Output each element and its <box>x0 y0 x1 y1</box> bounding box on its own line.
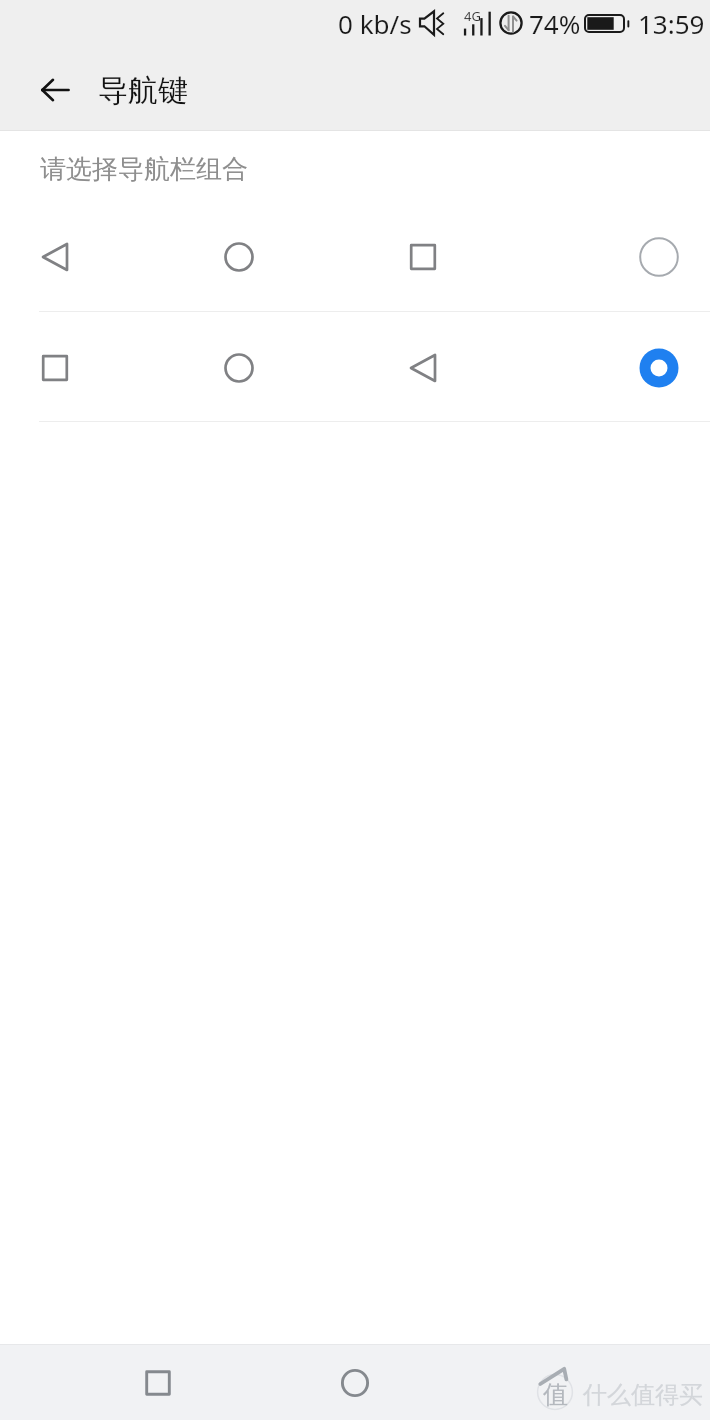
staticText: 导航键 <box>98 72 188 110</box>
staticText: 13:59 <box>638 6 705 41</box>
button[interactable]: Selected option <box>631 340 687 396</box>
staticText: 值 <box>543 1379 568 1410</box>
staticText: 74% <box>529 6 581 41</box>
staticText: 0 kb/s <box>338 6 412 41</box>
staticText: 4G <box>464 7 481 25</box>
staticText: 什么值得买 <box>583 1380 703 1410</box>
button[interactable]: Select option <box>0 201 710 311</box>
button[interactable]: Select option <box>631 229 687 285</box>
button[interactable]: Selected option <box>0 312 710 422</box>
button[interactable]: Back <box>32 66 80 114</box>
button[interactable]: Home <box>325 1353 385 1413</box>
button[interactable]: Recents <box>128 1353 188 1413</box>
staticText: 请选择导航栏组合 <box>40 153 248 186</box>
